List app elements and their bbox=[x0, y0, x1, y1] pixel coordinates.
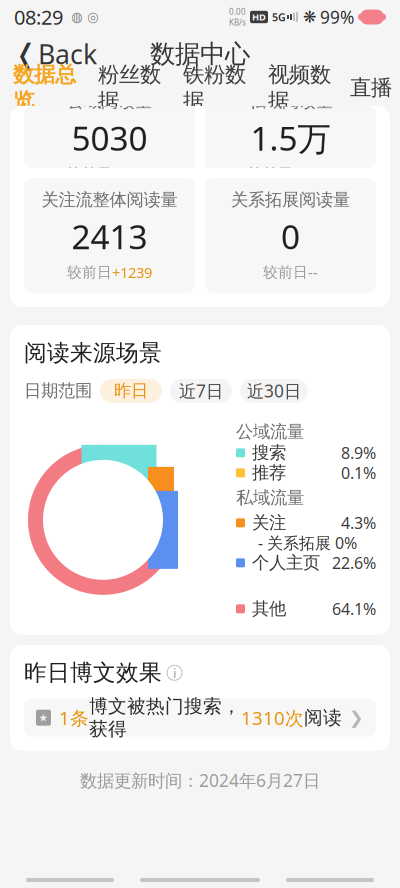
staticText: 较前日 bbox=[67, 165, 112, 183]
staticText: i bbox=[173, 664, 176, 682]
staticText: 关系拓展阅读量 bbox=[231, 189, 350, 210]
button[interactable]: ❬ bbox=[4, 30, 107, 78]
staticText: 08:29 bbox=[14, 4, 63, 30]
staticText: 0 bbox=[281, 214, 300, 259]
staticText: - 关系拓展 0% bbox=[258, 532, 357, 553]
staticText: 个人主页 bbox=[252, 552, 320, 573]
staticText: 较前日 bbox=[248, 165, 293, 183]
button[interactable]: 说明 bbox=[167, 665, 182, 680]
staticText: 关注 bbox=[252, 512, 286, 533]
staticText: 阅读 bbox=[304, 706, 342, 729]
staticText: ◍ ◎ bbox=[63, 9, 99, 24]
staticText: ❋ bbox=[303, 8, 316, 26]
staticText: ❯ bbox=[349, 708, 364, 727]
staticText: 22.6% bbox=[332, 552, 376, 573]
staticText: 阅读来源场景 bbox=[24, 339, 162, 367]
staticText: 私域流量 bbox=[236, 487, 304, 508]
staticText: 近30日 bbox=[247, 379, 301, 402]
staticText: 1条 bbox=[59, 705, 89, 730]
staticText: -- bbox=[308, 262, 318, 282]
button[interactable]: ★ bbox=[24, 699, 376, 737]
button[interactable]: 数据总览 bbox=[2, 61, 87, 120]
staticText: KB/s bbox=[229, 17, 246, 28]
staticText: 日期范围 bbox=[24, 380, 92, 401]
button[interactable]: 直播 bbox=[342, 75, 400, 107]
staticText: 铁粉数据 bbox=[183, 61, 246, 114]
staticText: 数据总览 bbox=[13, 61, 76, 114]
staticText: 数据中心 bbox=[150, 38, 250, 69]
staticText: -3.0万 bbox=[112, 164, 152, 183]
button[interactable]: 昨日 bbox=[100, 379, 162, 403]
staticText: +1239 bbox=[112, 262, 152, 282]
staticText: 公域流量 bbox=[236, 421, 304, 442]
staticText: 1310次 bbox=[241, 705, 304, 730]
staticText: 64.1% bbox=[332, 598, 376, 619]
staticText: HD bbox=[252, 11, 266, 23]
staticText: ★ bbox=[38, 712, 48, 724]
staticText: 昨日博文效果 bbox=[24, 659, 162, 687]
staticText: 0.00 bbox=[229, 6, 246, 17]
staticText: 其他 bbox=[252, 598, 286, 619]
staticText: 数据更新时间：2024年6月27日 bbox=[80, 769, 320, 792]
staticText: ❬ bbox=[14, 38, 37, 70]
staticText: 4.3% bbox=[341, 512, 376, 533]
button[interactable]: 视频数据 bbox=[257, 61, 342, 120]
staticText: 公域阅读量 bbox=[67, 90, 152, 112]
button[interactable]: 近30日 bbox=[240, 379, 308, 403]
staticText: 5030 bbox=[71, 116, 147, 160]
staticText: 搜索 bbox=[252, 442, 286, 463]
staticText: 5G bbox=[272, 10, 286, 24]
staticText: 博文被热门搜索，获得 bbox=[89, 695, 241, 741]
staticText: 较前日 bbox=[67, 263, 112, 281]
staticText: 99% bbox=[320, 5, 354, 28]
staticText: 1.5万 bbox=[250, 116, 330, 160]
staticText: 近7日 bbox=[179, 379, 223, 402]
button[interactable]: 粉丝数据 bbox=[87, 61, 172, 120]
staticText: 私域阅读量 bbox=[248, 90, 333, 112]
staticText: 2413 bbox=[71, 214, 147, 259]
staticText: 视频数据 bbox=[268, 61, 331, 114]
staticText: 昨日 bbox=[114, 380, 148, 401]
staticText: Back bbox=[38, 36, 97, 72]
staticText: 粉丝数据 bbox=[98, 61, 161, 114]
staticText: 较前日 bbox=[263, 263, 308, 281]
staticText: 0.1% bbox=[341, 462, 376, 483]
staticText: 推荐 bbox=[252, 462, 286, 483]
staticText: 关注流整体阅读量 bbox=[41, 189, 177, 210]
staticText: 直播 bbox=[350, 75, 392, 101]
staticText: +9903 bbox=[293, 164, 333, 183]
staticText: 8.9% bbox=[341, 442, 376, 463]
button[interactable]: 铁粉数据 bbox=[172, 61, 257, 120]
button[interactable]: 近7日 bbox=[170, 379, 232, 403]
